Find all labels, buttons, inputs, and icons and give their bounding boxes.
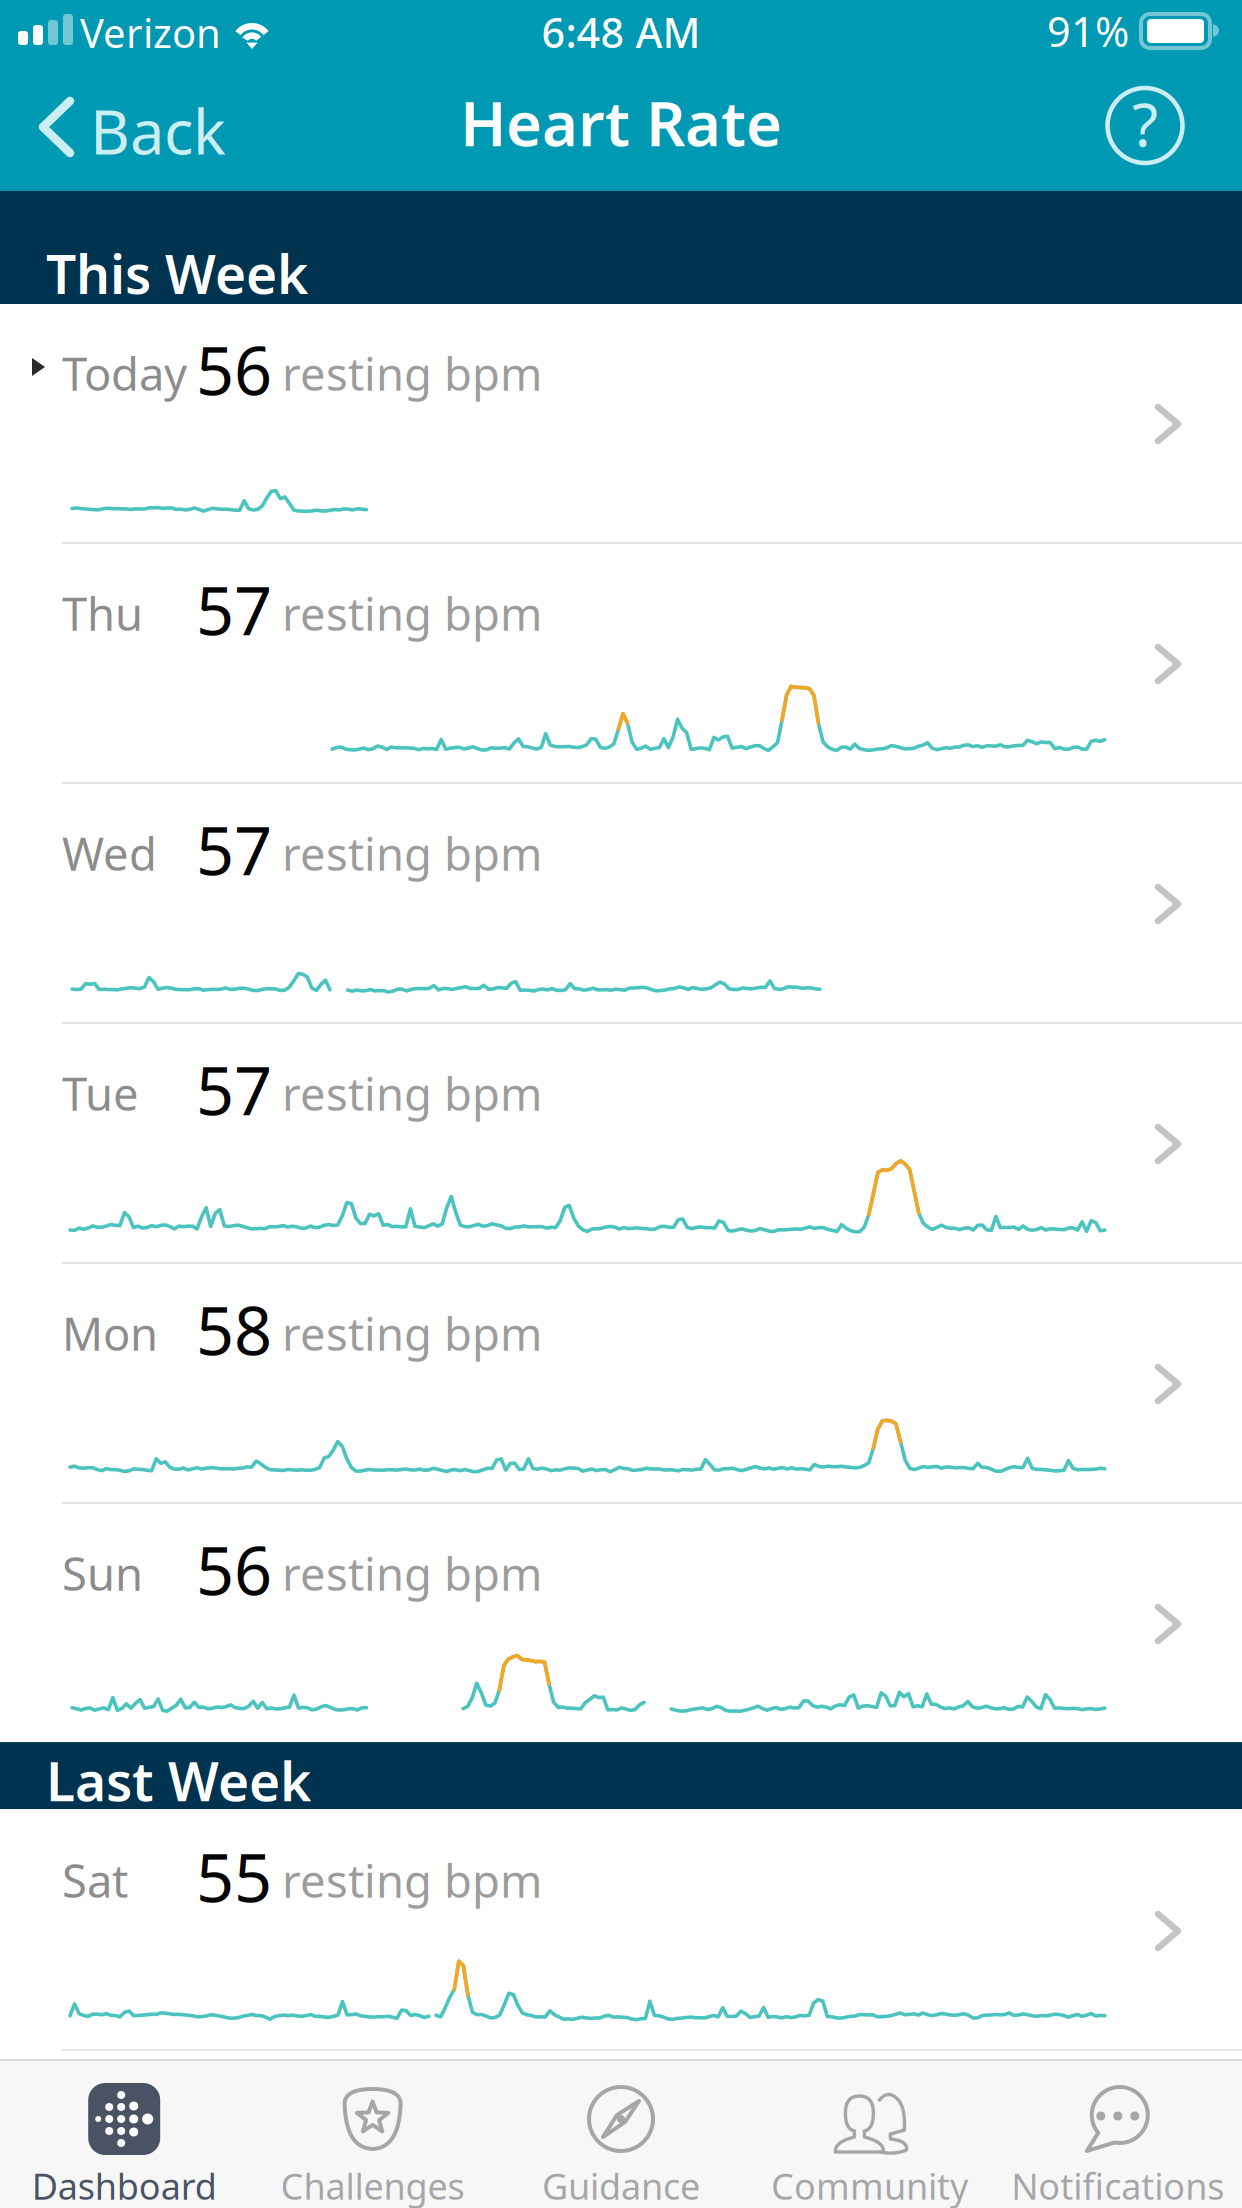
staticText: 55 (196, 1832, 272, 1920)
staticText: resting bpm (282, 1850, 542, 1910)
button[interactable]: Sat (0, 1811, 1242, 2051)
staticText: resting bpm (282, 1303, 542, 1363)
button[interactable]: Help (1080, 60, 1210, 191)
staticText: Sat (62, 1850, 128, 1910)
staticText: 91% (1047, 4, 1129, 58)
staticText: 57 (196, 805, 272, 893)
staticText: Notifications (1011, 2162, 1224, 2208)
button[interactable]: Guidance (497, 2061, 745, 2208)
staticText: resting bpm (282, 1063, 542, 1123)
staticText: resting bpm (282, 1543, 542, 1603)
staticText: Thu (62, 583, 143, 643)
staticText: 56 (196, 1525, 272, 1613)
staticText: 57 (196, 565, 272, 653)
button[interactable]: Notifications (994, 2061, 1242, 2208)
button[interactable]: Challenges (248, 2061, 497, 2208)
button[interactable]: Back (0, 60, 230, 191)
staticText: Sun (62, 1543, 143, 1603)
staticText: Today (62, 343, 187, 403)
staticText: resting bpm (282, 823, 542, 883)
staticText: Back (90, 90, 226, 171)
staticText: 58 (196, 1285, 272, 1373)
staticText: resting bpm (282, 343, 542, 403)
staticText: Tue (62, 1063, 139, 1123)
button[interactable]: Mon (0, 1264, 1242, 1504)
button[interactable]: Today (0, 304, 1242, 544)
button[interactable]: Sun (0, 1504, 1242, 1744)
staticText: Community (771, 2162, 968, 2208)
staticText: Challenges (281, 2162, 465, 2208)
staticText: resting bpm (282, 583, 542, 643)
staticText: Mon (62, 1303, 158, 1363)
staticText: Last Week (46, 1745, 311, 1816)
staticText: 57 (196, 1045, 272, 1133)
button[interactable]: Tue (0, 1024, 1242, 1264)
staticText: Guidance (542, 2162, 700, 2208)
button[interactable]: Community (745, 2061, 994, 2208)
staticText: Wed (62, 823, 157, 883)
button[interactable]: Dashboard (0, 2061, 248, 2208)
staticText: This Week (46, 238, 308, 309)
staticText: ? (1132, 84, 1158, 163)
staticText: 6:48 AM (541, 5, 700, 59)
staticText: Heart Rate (460, 82, 782, 163)
button[interactable]: Wed (0, 784, 1242, 1024)
button[interactable]: Thu (0, 544, 1242, 784)
staticText: 56 (196, 325, 272, 413)
staticText: Verizon (80, 6, 221, 59)
staticText: Dashboard (32, 2162, 217, 2208)
